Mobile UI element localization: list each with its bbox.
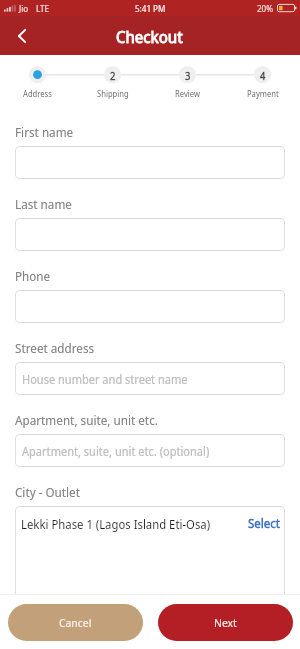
staticText: Last name (15, 196, 72, 213)
button[interactable]: Back (8, 22, 36, 50)
staticText: Shipping (97, 88, 129, 99)
staticText: Payment (247, 88, 279, 99)
button[interactable]: 4 (225, 55, 300, 107)
button[interactable]: 3 (150, 55, 225, 107)
button[interactable]: House number and street name (15, 362, 285, 395)
staticText: Checkout (116, 26, 183, 48)
button[interactable]: 2 (75, 55, 150, 107)
staticText: Jio (19, 3, 29, 15)
button[interactable] (15, 218, 285, 251)
staticText: 5:41 PM (135, 3, 166, 15)
button[interactable]: Address (0, 55, 75, 107)
staticText: House number and street name (22, 371, 188, 387)
button[interactable] (15, 146, 285, 179)
button[interactable]: Cancel (8, 604, 143, 641)
staticText: Apartment, suite, unit etc. (15, 412, 158, 429)
staticText: 3 (185, 69, 191, 83)
staticText: Cancel (59, 615, 92, 630)
staticText: First name (15, 124, 74, 141)
staticText: Select (248, 515, 280, 532)
staticText: Lekki Phase 1 (Lagos Island Eti-Osa) (21, 516, 211, 532)
staticText: LTE (36, 3, 50, 15)
button[interactable]: Lekki Phase 1 (Lagos Island Eti-Osa) (21, 515, 280, 532)
staticText: Phone (15, 268, 51, 285)
staticText: Street address (15, 340, 95, 357)
staticText: Next (214, 615, 237, 630)
staticText: Review (175, 88, 200, 99)
staticText: Apartment, suite, unit etc. (optional) (22, 443, 210, 459)
button[interactable]: Apartment, suite, unit etc. (optional) (15, 434, 285, 467)
staticText: 2 (110, 69, 116, 83)
staticText: City - Outlet (15, 484, 80, 501)
staticText: 20% (257, 3, 273, 15)
staticText: 4 (260, 69, 266, 83)
button[interactable]: Next (158, 604, 293, 641)
staticText: Address (23, 88, 52, 99)
button[interactable] (15, 290, 285, 323)
